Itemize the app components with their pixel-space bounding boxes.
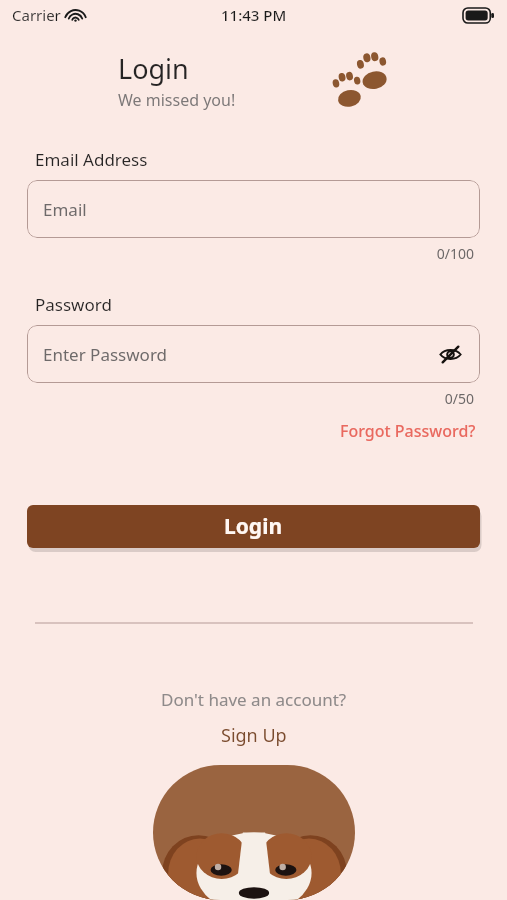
staticText: Password <box>35 293 112 316</box>
button[interactable]: Email <box>27 180 480 238</box>
staticText: We missed you! <box>118 89 236 111</box>
button[interactable]: Forgot Password? <box>336 418 480 444</box>
button[interactable]: Enter Password <box>27 325 480 383</box>
staticText: Enter Password <box>43 343 168 366</box>
staticText: Forgot Password? <box>340 420 476 442</box>
staticText: Don't have an account? <box>161 688 347 711</box>
staticText: 0/50 <box>27 389 474 408</box>
staticText: Carrier <box>12 5 61 25</box>
staticText: 11:43 PM <box>221 5 287 25</box>
button[interactable]: Sign Up <box>215 721 293 750</box>
button[interactable]: Show password <box>434 338 466 370</box>
staticText: 0/100 <box>27 244 474 263</box>
staticText: Login <box>118 50 189 87</box>
staticText: Sign Up <box>221 723 287 748</box>
staticText: Login <box>224 512 283 541</box>
button[interactable]: Login <box>27 505 480 548</box>
staticText: Email Address <box>35 148 148 171</box>
staticText: Email <box>43 198 87 221</box>
